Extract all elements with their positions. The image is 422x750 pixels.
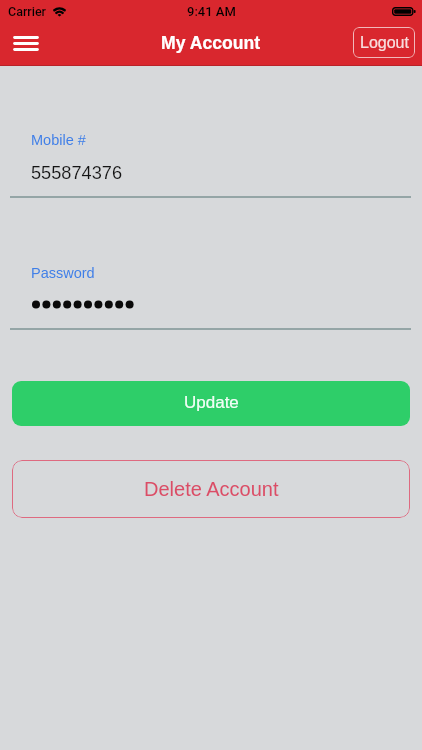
staticText: Password [31,265,95,281]
staticText: Update [184,393,239,412]
button[interactable]: Menu [4,25,47,61]
other: Password [31,299,135,310]
staticText: Delete Account [144,478,279,500]
staticText: 9:41 AM [187,4,236,19]
staticText: Mobile # [31,132,86,148]
staticText: Carrier [8,4,47,19]
button[interactable]: Logout [353,27,415,58]
staticText: Logout [360,34,409,52]
staticText: 555874376 [31,163,123,183]
button[interactable]: Delete Account [12,460,410,518]
button[interactable]: Update [12,381,410,426]
staticText: My Account [161,33,261,53]
